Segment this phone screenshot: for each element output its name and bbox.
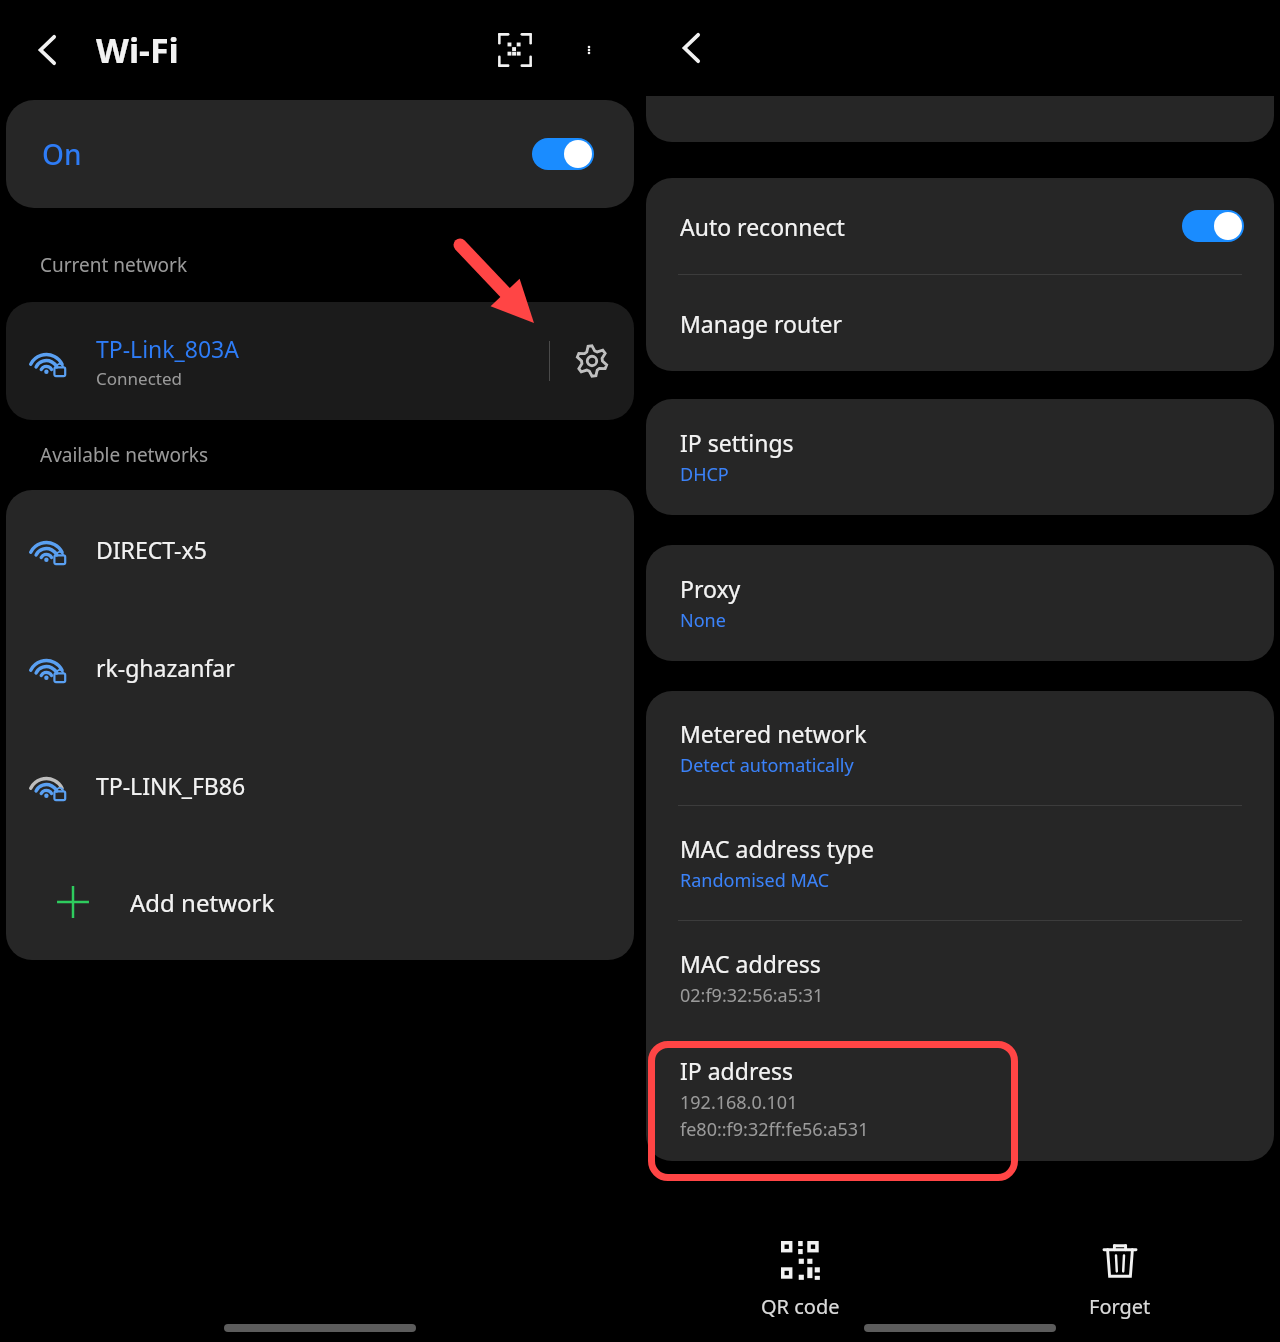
staticText: Proxy	[680, 573, 741, 604]
button[interactable]: MAC address	[646, 921, 1274, 1035]
staticText: 02:f9:32:56:a5:31	[680, 983, 824, 1008]
staticText: Current network	[40, 252, 188, 278]
staticText: TP-LINK_FB86	[96, 770, 246, 801]
button[interactable]: More options	[552, 13, 626, 87]
staticText: MAC address type	[680, 833, 874, 864]
staticText: Add network	[130, 886, 275, 919]
button[interactable]: Proxy	[646, 545, 1274, 661]
staticText: rk-ghazanfar	[96, 652, 235, 683]
staticText: DHCP	[680, 462, 729, 487]
button[interactable]: IP settings	[646, 399, 1274, 515]
staticText: Randomised MAC	[680, 868, 830, 893]
staticText: Auto reconnect	[680, 211, 845, 242]
button[interactable]: Toggle on	[1182, 210, 1244, 242]
staticText: fe80::f9:32ff:fe56:a531	[680, 1117, 869, 1142]
staticText: MAC address	[680, 948, 821, 979]
staticText: Metered network	[680, 718, 867, 749]
staticText: QR code	[761, 1293, 840, 1320]
button[interactable]: Network settings	[550, 302, 634, 420]
staticText: Forget	[1089, 1293, 1151, 1320]
staticText: Wi-Fi	[96, 27, 179, 73]
button[interactable]: Back	[0, 0, 96, 100]
button[interactable]: QR code	[753, 1233, 848, 1328]
button[interactable]: On	[6, 100, 634, 208]
button[interactable]: Toggle on	[532, 138, 594, 170]
button[interactable]: rk-ghazanfar	[6, 608, 634, 726]
staticText: Available networks	[40, 442, 208, 468]
staticText: Connected	[96, 367, 182, 390]
button[interactable]: DIRECT-x5	[6, 490, 634, 608]
staticText: Manage router	[680, 308, 842, 339]
staticText: None	[680, 608, 726, 633]
button[interactable]: Metered network	[646, 691, 1274, 805]
button[interactable]: TP-Link_803A	[6, 302, 634, 420]
staticText: DIRECT-x5	[96, 534, 207, 565]
button[interactable]: Add network	[6, 844, 634, 960]
staticText: IP address	[680, 1055, 793, 1086]
button[interactable]: Auto reconnect	[646, 178, 1274, 274]
button[interactable]: Manage router	[646, 275, 1274, 371]
staticText: IP settings	[680, 427, 794, 458]
staticText: TP-Link_803A	[96, 333, 239, 364]
staticText: Detect automatically	[680, 753, 854, 778]
staticText: 192.168.0.101	[680, 1090, 798, 1115]
button[interactable]: Forget	[1081, 1233, 1159, 1328]
button[interactable]: TP-LINK_FB86	[6, 726, 634, 844]
staticText: On	[42, 135, 82, 173]
button[interactable]: Scan QR code	[478, 13, 552, 87]
button[interactable]: Back	[640, 0, 744, 96]
button[interactable]: MAC address type	[646, 806, 1274, 920]
